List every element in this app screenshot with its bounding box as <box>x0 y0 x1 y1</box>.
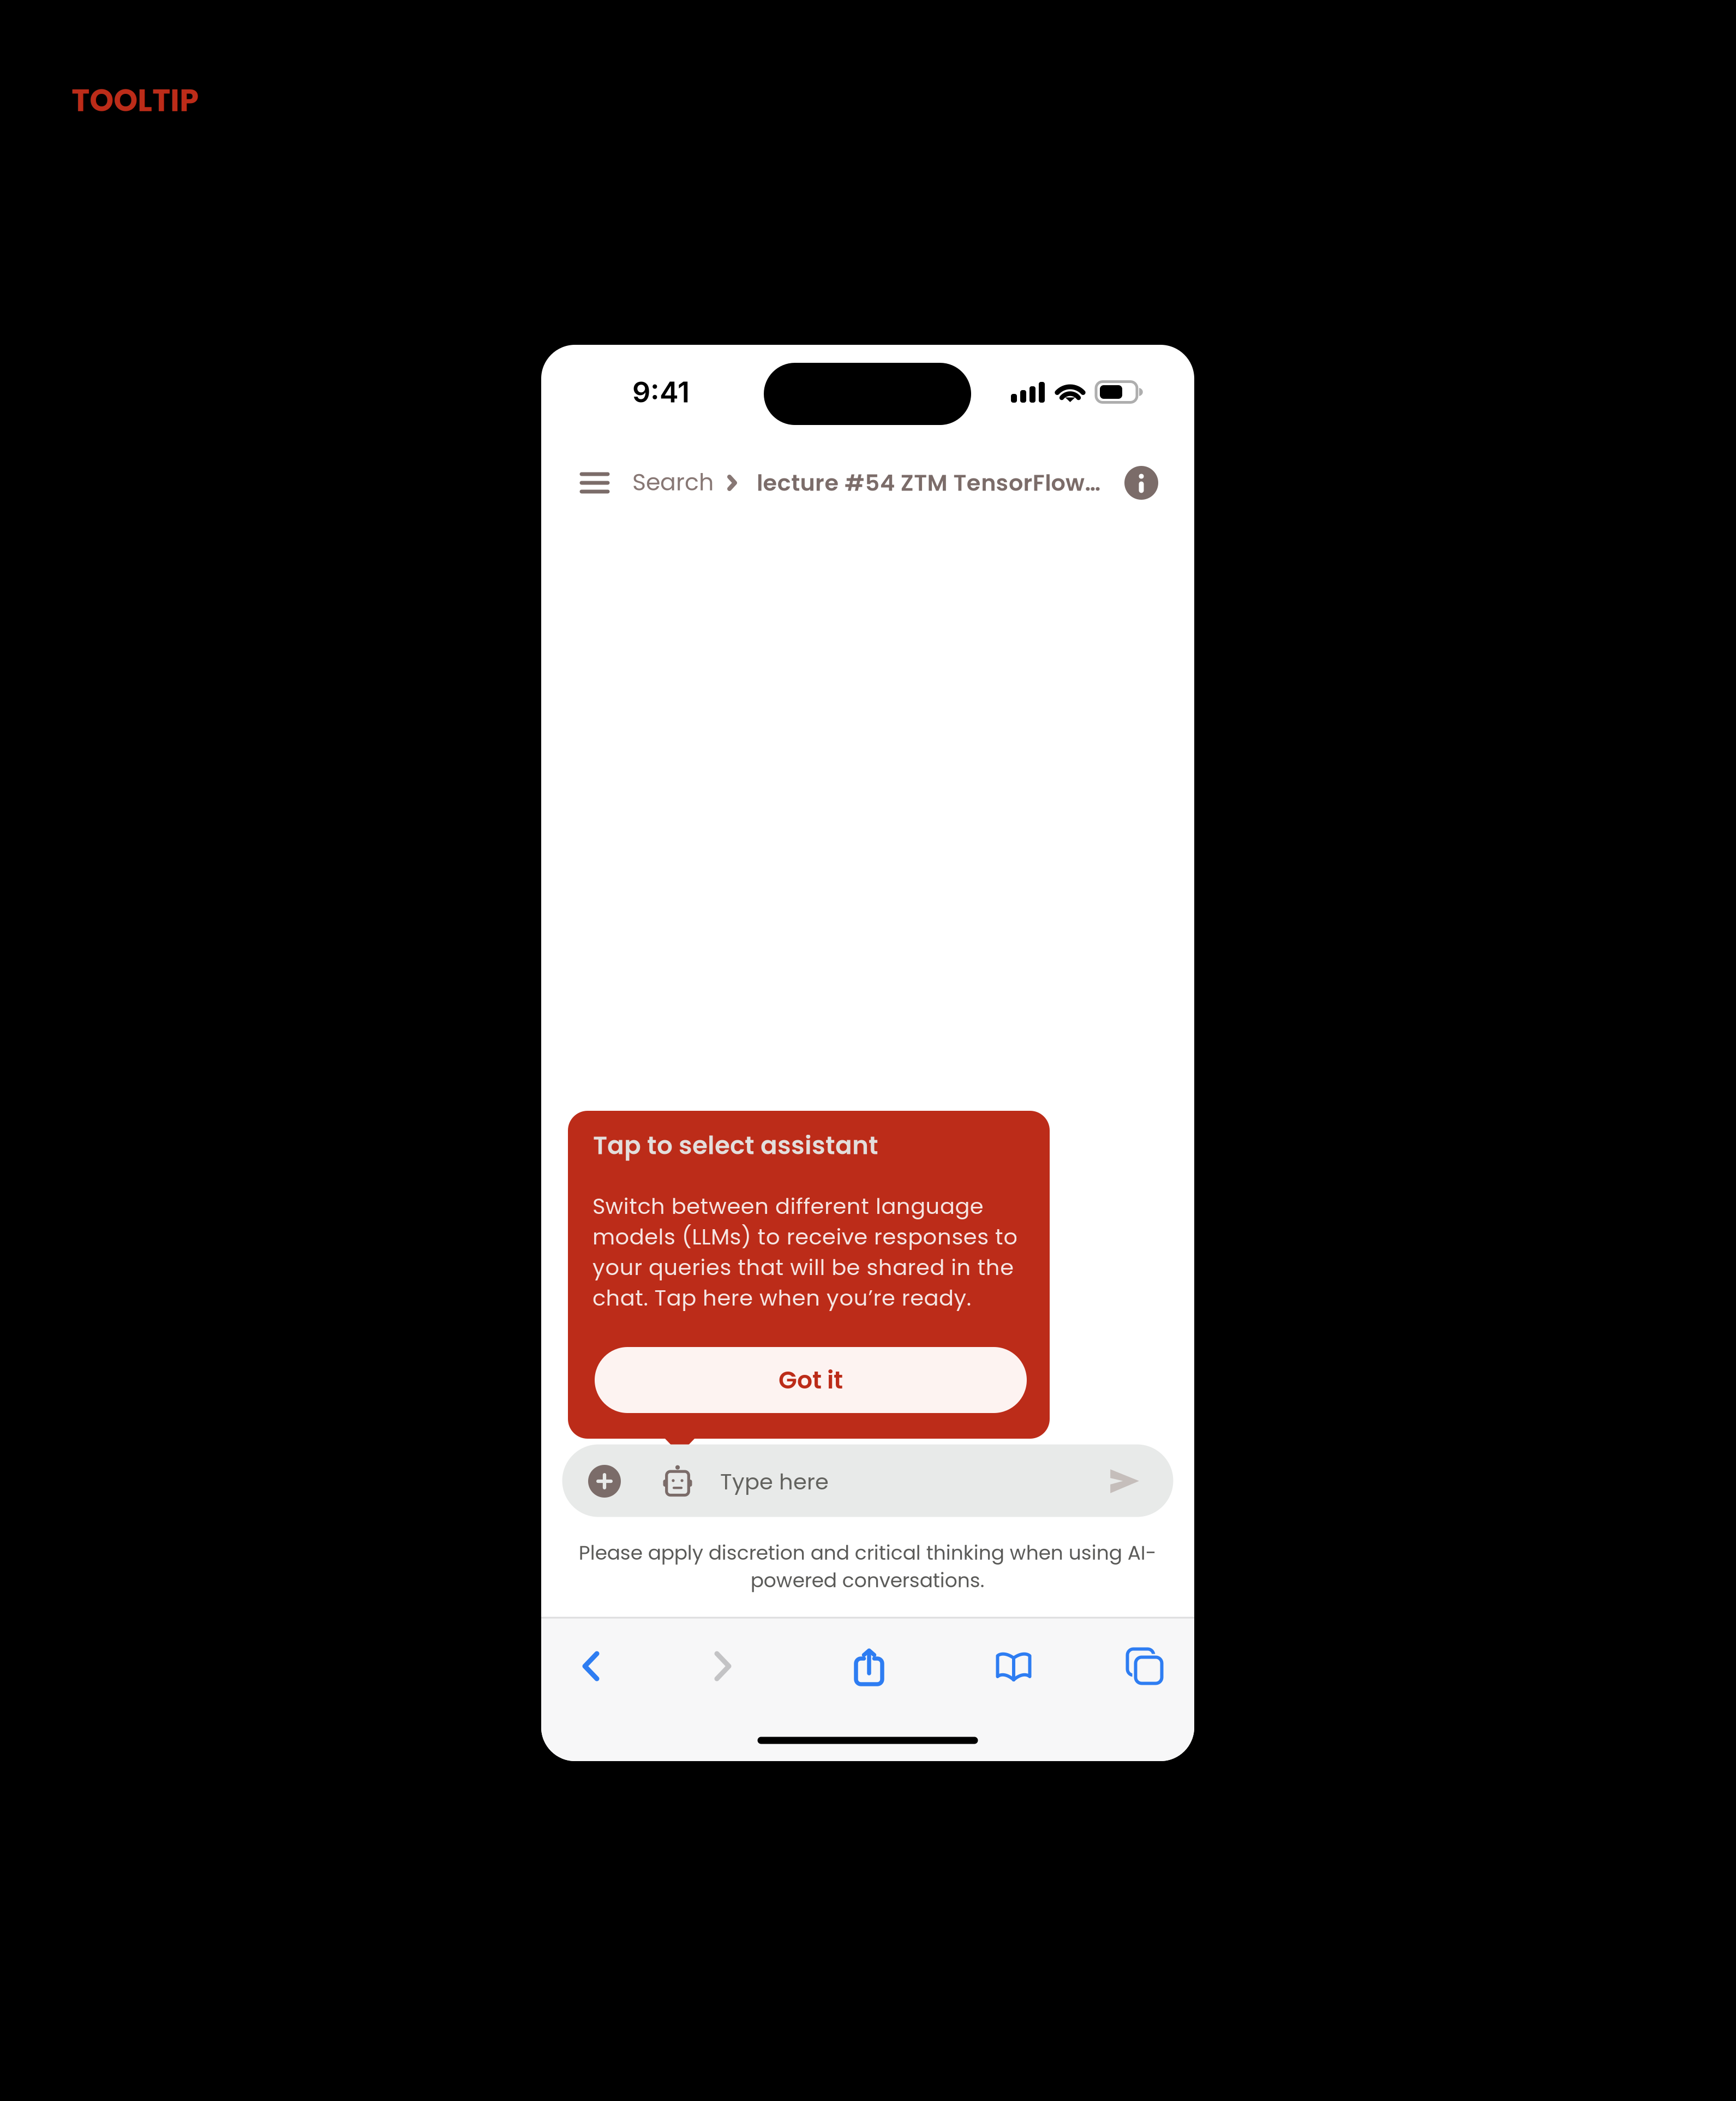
staticText: lecture #54 ZTM TensorFlow… <box>757 467 1101 499</box>
button[interactable]: Bookmarks <box>541 1633 1194 1699</box>
button[interactable]: Share <box>541 1633 1194 1699</box>
staticText: TOOLTIP <box>71 79 199 122</box>
staticText: Type here <box>720 1466 829 1497</box>
button[interactable]: Add attachment <box>541 345 1194 1761</box>
staticText: Switch between different language models… <box>592 1191 1018 1313</box>
staticText: Please apply discretion and critical thi… <box>579 1539 1156 1594</box>
button[interactable]: Search <box>541 345 1194 1761</box>
button[interactable]: Info <box>541 345 1194 1761</box>
button[interactable]: Got it <box>595 1347 1027 1413</box>
button[interactable]: Tabs <box>541 1633 1194 1699</box>
staticText: Got it <box>779 1363 843 1397</box>
button[interactable]: Forward <box>541 1633 1194 1699</box>
staticText: 9:41 <box>632 375 690 409</box>
button[interactable]: Menu <box>541 345 1194 1761</box>
button[interactable]: Select assistant <box>541 345 1194 1761</box>
button[interactable]: Back <box>541 1633 1194 1699</box>
staticText: Tap to select assistant <box>593 1128 878 1163</box>
button[interactable]: Send <box>541 345 1194 1761</box>
staticText: Search <box>632 466 714 498</box>
